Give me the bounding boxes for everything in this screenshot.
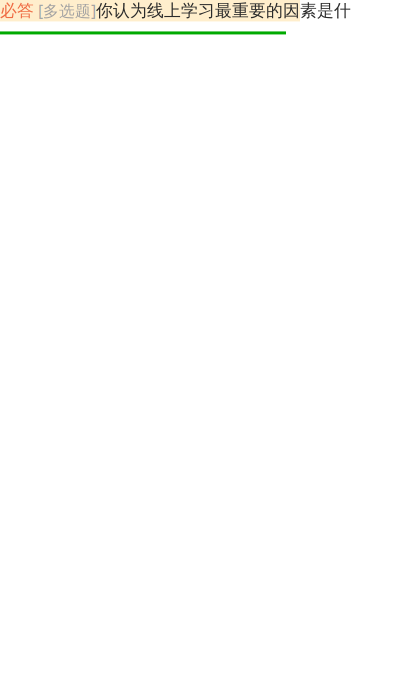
staticText: 必答 (0, 0, 34, 21)
staticText: 你认为线上学习最重要的因素是什 (96, 0, 351, 21)
staticText: [多选题] (34, 0, 96, 21)
